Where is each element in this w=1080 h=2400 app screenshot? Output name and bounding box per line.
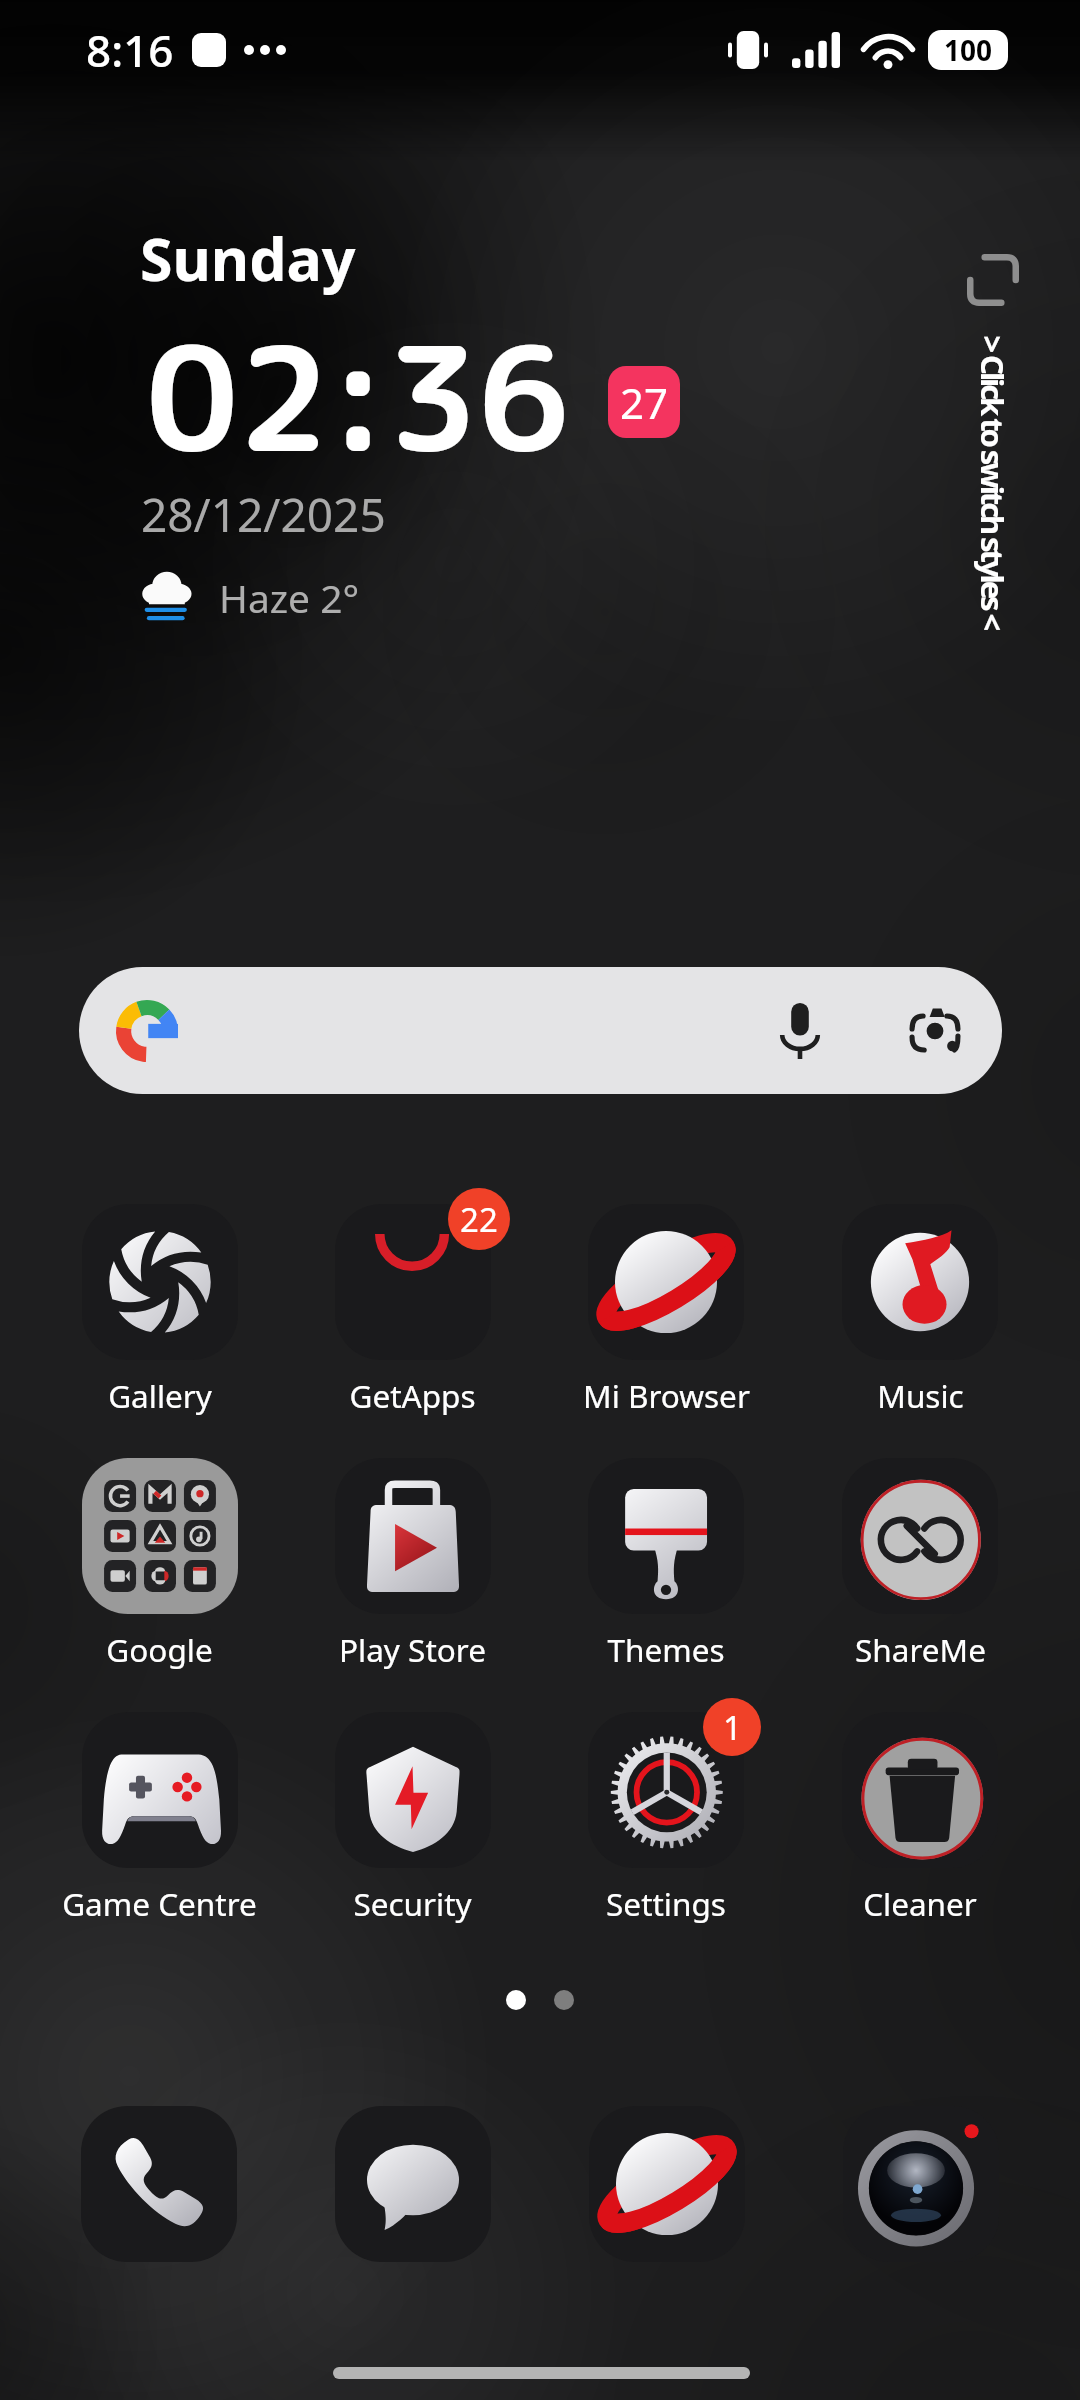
staticText: Settings	[606, 1882, 726, 1925]
staticText: Themes	[607, 1628, 725, 1671]
button[interactable]: Music	[793, 1204, 1047, 1417]
staticText: Google	[106, 1628, 213, 1671]
button[interactable]: ShareMe	[793, 1458, 1047, 1671]
button[interactable]: Search	[79, 967, 1002, 1094]
staticText: Haze 2°	[219, 571, 360, 624]
staticText: 27	[620, 374, 669, 431]
staticText: 1	[723, 1705, 742, 1750]
button[interactable]: Click to switch styles	[962, 254, 1024, 626]
staticText: 8:16	[86, 20, 174, 80]
staticText: Music	[877, 1374, 964, 1417]
button[interactable]: Messages	[335, 2106, 491, 2262]
staticText: 22	[460, 1197, 498, 1242]
staticText: Game Centre	[62, 1882, 257, 1925]
staticText: 28/12/2025	[141, 483, 386, 546]
button[interactable]: Gallery	[33, 1204, 286, 1417]
staticText: Security	[353, 1882, 472, 1925]
staticText: Mi Browser	[583, 1374, 750, 1417]
button[interactable]: Browser	[589, 2106, 745, 2262]
button[interactable]: Camera	[843, 2106, 999, 2262]
button[interactable]: Cleaner	[793, 1712, 1047, 1925]
button[interactable]: Phone	[81, 2106, 237, 2262]
button[interactable]: Play Store	[286, 1458, 539, 1671]
button[interactable]: 22	[286, 1204, 539, 1417]
staticText: Gallery	[108, 1374, 212, 1417]
staticText: GetApps	[349, 1374, 476, 1417]
button[interactable]: Security	[286, 1712, 539, 1925]
button[interactable]: Mi Browser	[539, 1204, 793, 1417]
staticText: Cleaner	[863, 1882, 977, 1925]
staticText: Play Store	[339, 1628, 486, 1671]
staticText: ShareMe	[855, 1628, 986, 1671]
button[interactable]: 1	[539, 1712, 793, 1925]
button[interactable]: Google	[33, 1458, 286, 1671]
button[interactable]: Game Centre	[33, 1712, 286, 1925]
staticText: Sunday	[140, 218, 356, 298]
staticText: 100	[944, 31, 993, 69]
staticText: 02:36	[146, 296, 569, 497]
button[interactable]: Themes	[539, 1458, 793, 1671]
